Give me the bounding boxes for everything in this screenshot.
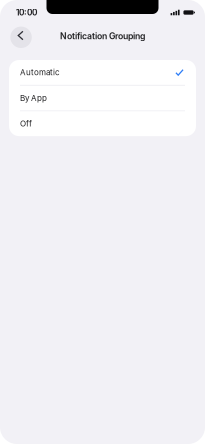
staticText: 10:00	[16, 7, 37, 17]
staticText: By App	[20, 93, 47, 103]
button[interactable]: By App	[9, 86, 196, 111]
staticText: Off	[20, 119, 32, 128]
staticText: Automatic	[20, 68, 60, 77]
button[interactable]: Back	[10, 26, 32, 47]
button[interactable]: Automatic	[9, 60, 196, 86]
staticText: Notification Grouping	[60, 31, 145, 41]
button[interactable]: Off	[9, 111, 196, 136]
